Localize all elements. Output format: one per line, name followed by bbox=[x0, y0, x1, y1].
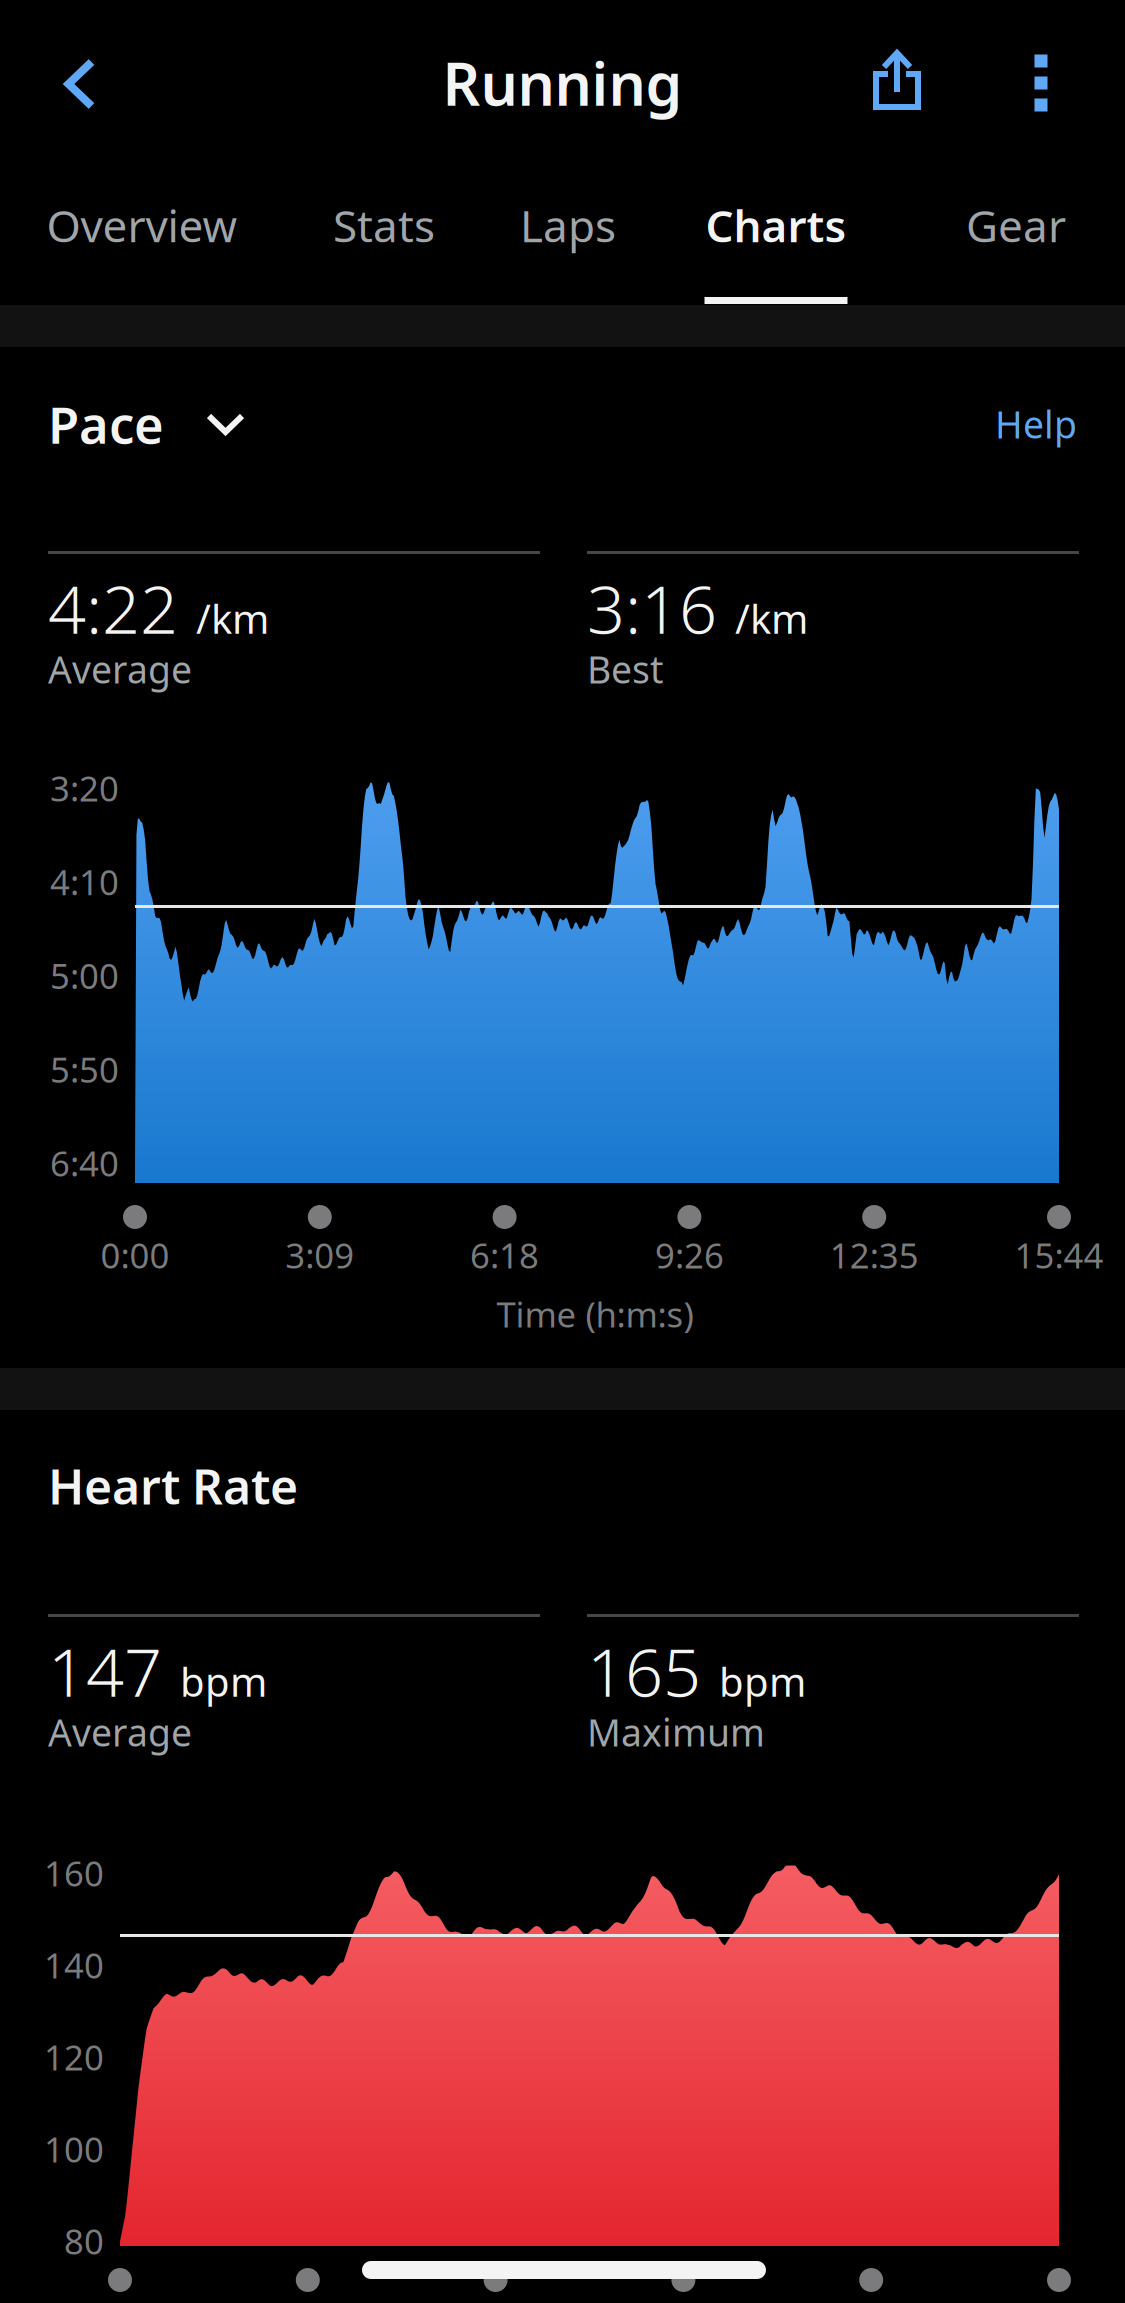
staticText: 165 bbox=[587, 1627, 701, 1715]
staticText: bpm bbox=[719, 1655, 806, 1708]
button[interactable]: More options bbox=[982, 36, 1100, 130]
staticText: Average bbox=[48, 644, 192, 694]
button[interactable]: Gear bbox=[866, 172, 1125, 306]
staticText: Pace bbox=[48, 390, 164, 458]
staticText: Maximum bbox=[587, 1707, 765, 1757]
button[interactable]: Laps bbox=[418, 172, 718, 306]
staticText: Help bbox=[995, 399, 1077, 449]
staticText: bpm bbox=[180, 1655, 267, 1708]
staticText: Best bbox=[587, 644, 663, 694]
staticText: 147 bbox=[48, 1627, 162, 1715]
button[interactable]: Charts bbox=[626, 172, 926, 306]
staticText: 5:00 bbox=[50, 952, 119, 998]
staticText: 140 bbox=[44, 1942, 104, 1988]
staticText: Time (h:m:s) bbox=[496, 1291, 693, 1337]
staticText: Stats bbox=[333, 196, 435, 254]
staticText: 5:50 bbox=[50, 1046, 119, 1092]
staticText: 15:44 bbox=[1014, 1232, 1103, 1278]
staticText: Average bbox=[48, 1707, 192, 1757]
staticText: Running bbox=[442, 44, 682, 122]
button[interactable]: Back bbox=[12, 38, 148, 130]
staticText: 9:26 bbox=[655, 1232, 724, 1278]
staticText: Heart Rate bbox=[48, 1454, 298, 1518]
staticText: 80 bbox=[64, 2218, 104, 2264]
button[interactable]: Share bbox=[838, 33, 956, 127]
staticText: 160 bbox=[44, 1850, 104, 1896]
staticText: 120 bbox=[44, 2034, 104, 2080]
staticText: 12:35 bbox=[830, 1232, 919, 1278]
staticText: 100 bbox=[44, 2126, 104, 2172]
staticText: 6:40 bbox=[50, 1140, 119, 1186]
staticText: Laps bbox=[520, 196, 616, 254]
button[interactable]: Pace bbox=[48, 396, 348, 452]
staticText: Overview bbox=[46, 196, 237, 254]
staticText: /km bbox=[196, 592, 269, 645]
button[interactable]: Stats bbox=[234, 172, 534, 306]
staticText: 3:20 bbox=[50, 765, 119, 811]
staticText: 3:16 bbox=[587, 564, 717, 652]
staticText: 6:18 bbox=[470, 1232, 539, 1278]
staticText: 3:09 bbox=[285, 1232, 354, 1278]
staticText: Charts bbox=[705, 196, 846, 254]
staticText: /km bbox=[735, 592, 808, 645]
button[interactable]: Overview bbox=[0, 172, 292, 306]
staticText: 4:10 bbox=[50, 859, 119, 905]
staticText: 4:22 bbox=[48, 564, 178, 652]
staticText: Gear bbox=[966, 196, 1066, 254]
staticText: 0:00 bbox=[100, 1232, 169, 1278]
button[interactable]: Help bbox=[877, 396, 1077, 452]
